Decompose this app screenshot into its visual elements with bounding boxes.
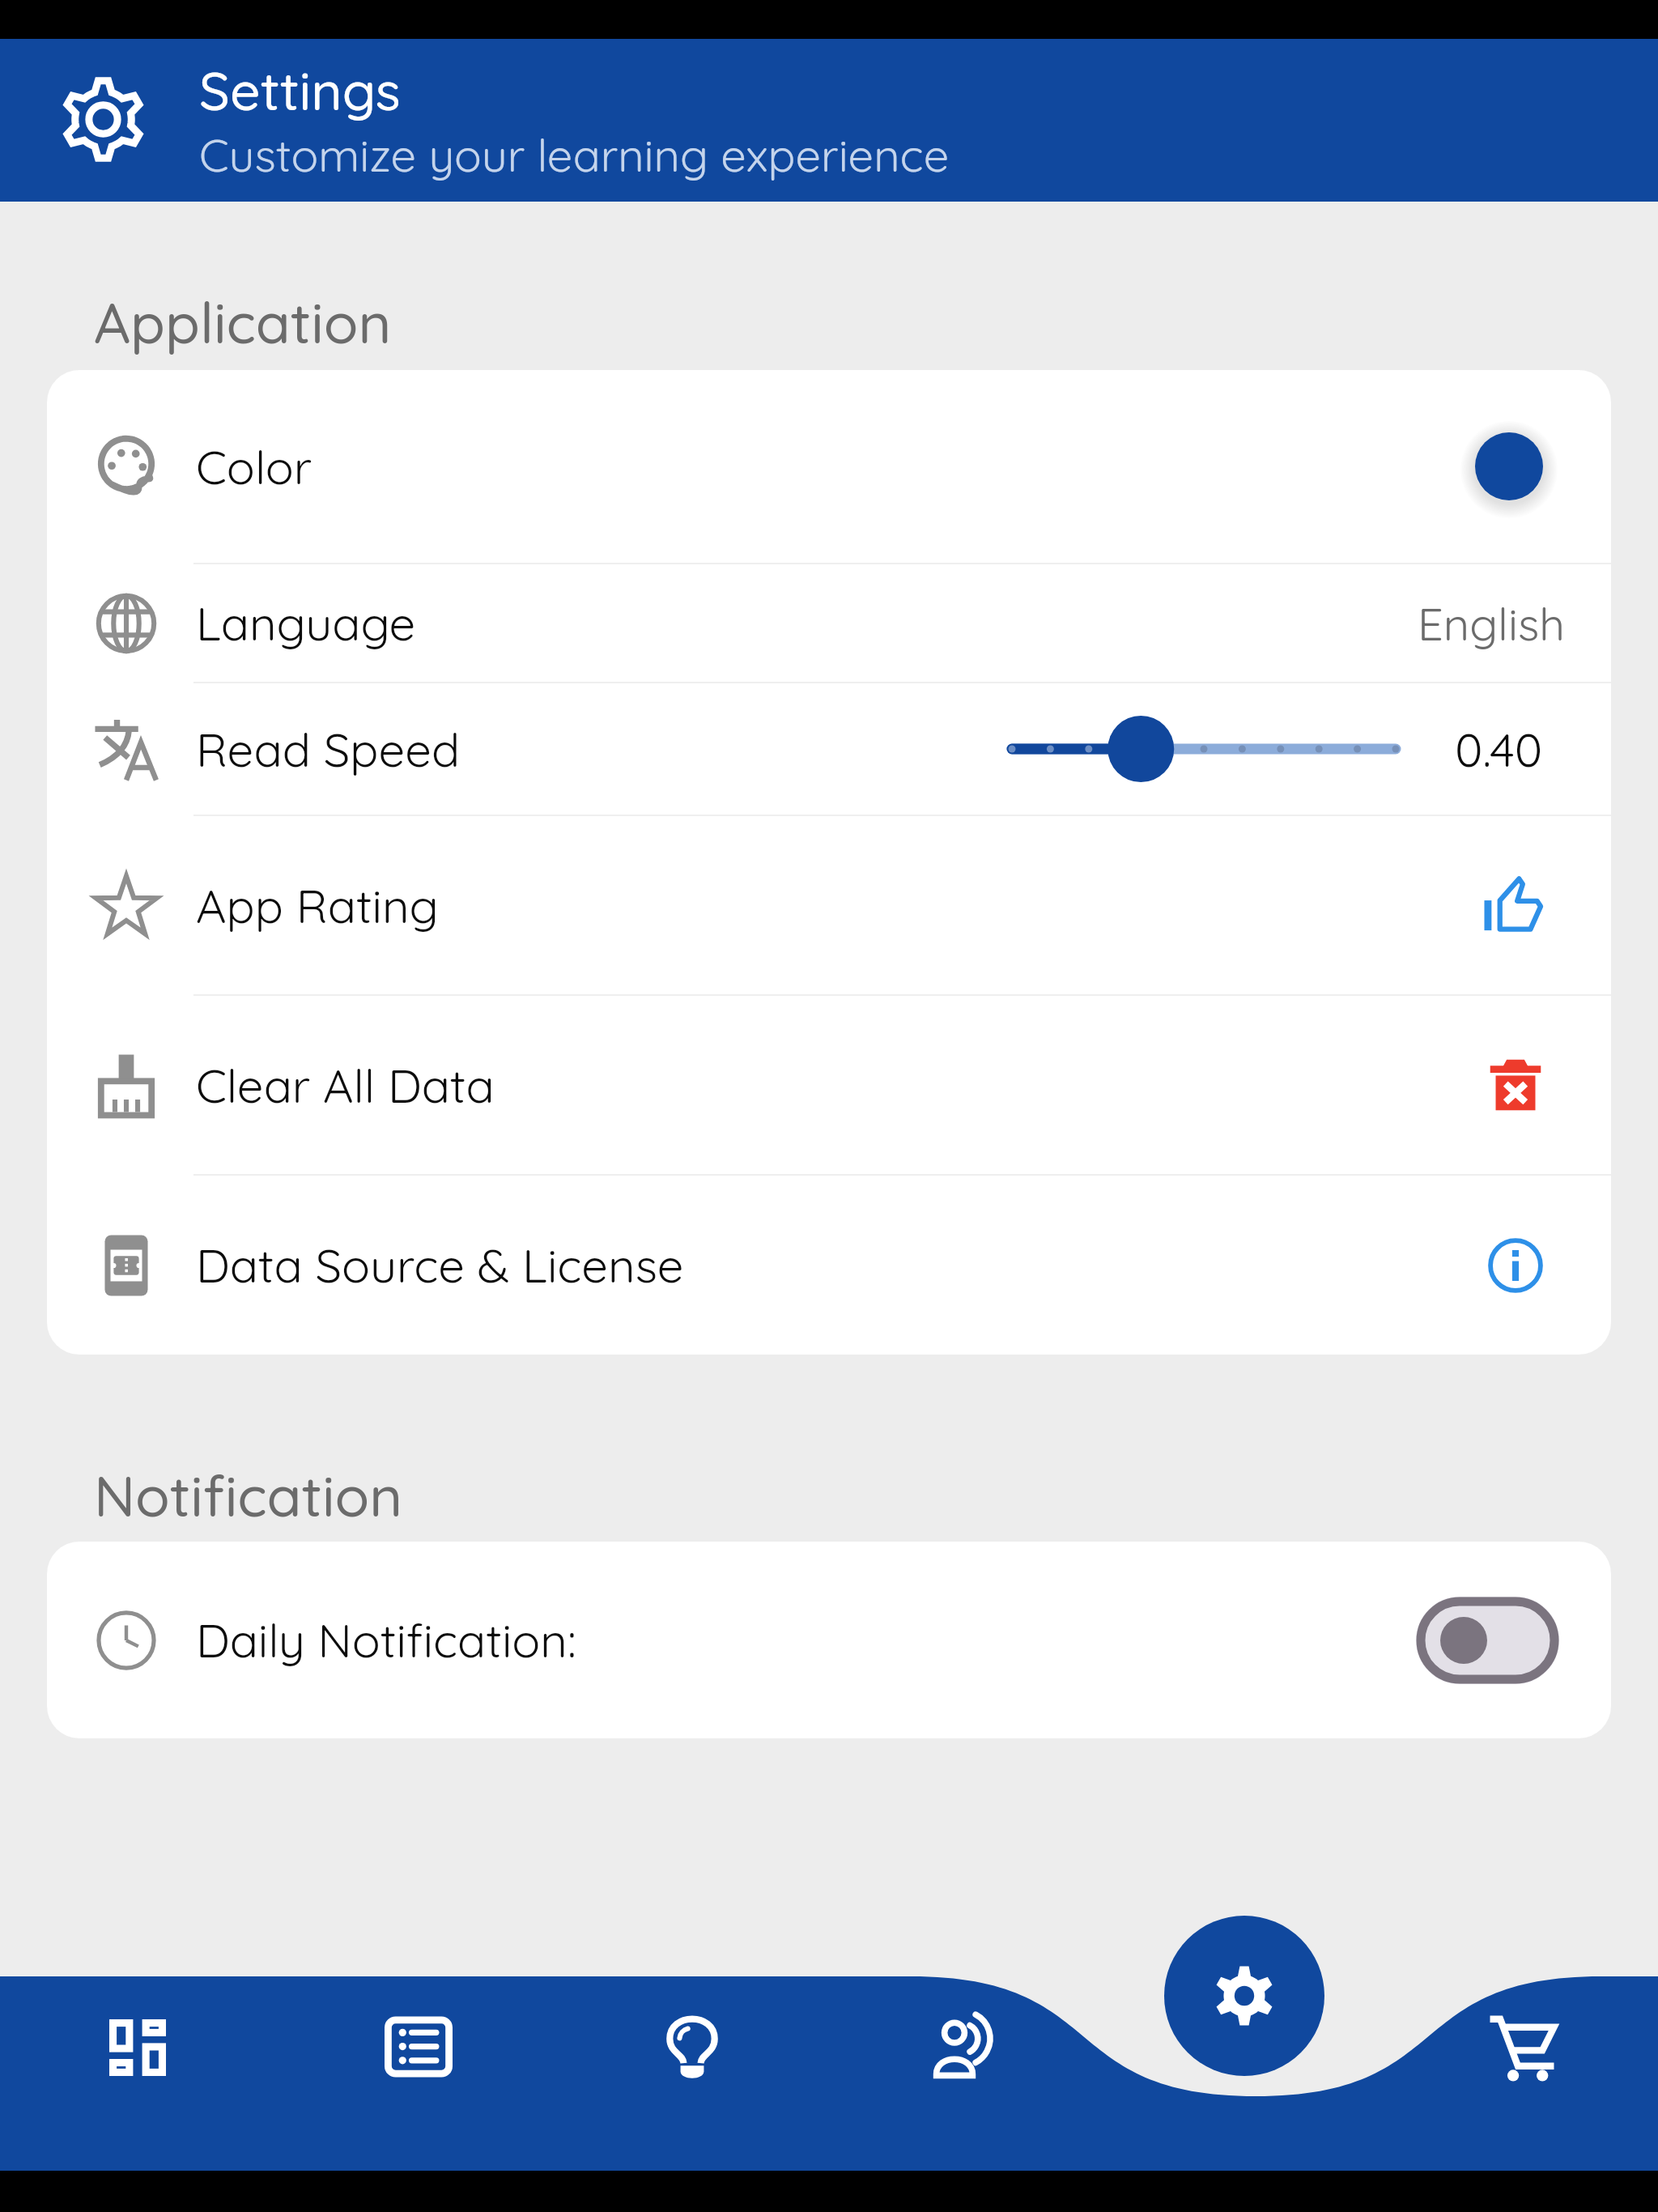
- button[interactable]: Information: [1488, 1238, 1543, 1293]
- staticText: Customize your learning experience: [199, 126, 950, 183]
- button[interactable]: Speak: [911, 1991, 1024, 2104]
- button[interactable]: Settings: [1164, 1916, 1324, 2076]
- staticText: Settings: [199, 57, 401, 124]
- button[interactable]: Dashboard: [81, 1991, 194, 2104]
- staticText: Application: [94, 287, 392, 358]
- staticText: Daily Notification:: [196, 1610, 576, 1670]
- staticText: 0.40: [1455, 720, 1543, 779]
- staticText: Data Source & License: [196, 1236, 684, 1295]
- button[interactable]: Settings: [60, 76, 147, 163]
- button[interactable]: Clear All Data: [47, 996, 1611, 1174]
- staticText: Language: [196, 593, 416, 653]
- button[interactable]: Cart: [1465, 1991, 1579, 2104]
- staticText: Notification: [94, 1460, 403, 1531]
- button[interactable]: List: [362, 1990, 475, 2104]
- button[interactable]: Data Source & License: [47, 1176, 1611, 1355]
- button[interactable]: Rate app: [1483, 875, 1543, 935]
- staticText: English: [1418, 595, 1566, 652]
- button[interactable]: Delete all data: [1488, 1057, 1543, 1112]
- button[interactable]: Daily notification toggle: [1416, 1597, 1559, 1684]
- button[interactable]: Read Speed: [47, 683, 1611, 815]
- button[interactable]: Language: [47, 564, 1611, 682]
- staticText: Read Speed: [196, 720, 461, 779]
- button[interactable]: App Rating: [47, 816, 1611, 994]
- staticText: Clear All Data: [196, 1056, 495, 1115]
- button[interactable]: Color: [47, 370, 1611, 563]
- staticText: App Rating: [196, 876, 439, 935]
- button[interactable]: Daily Notification:: [47, 1542, 1611, 1738]
- button[interactable]: Pick theme colour: [1460, 418, 1558, 515]
- button[interactable]: Tips: [636, 1991, 749, 2104]
- staticText: Color: [196, 437, 312, 496]
